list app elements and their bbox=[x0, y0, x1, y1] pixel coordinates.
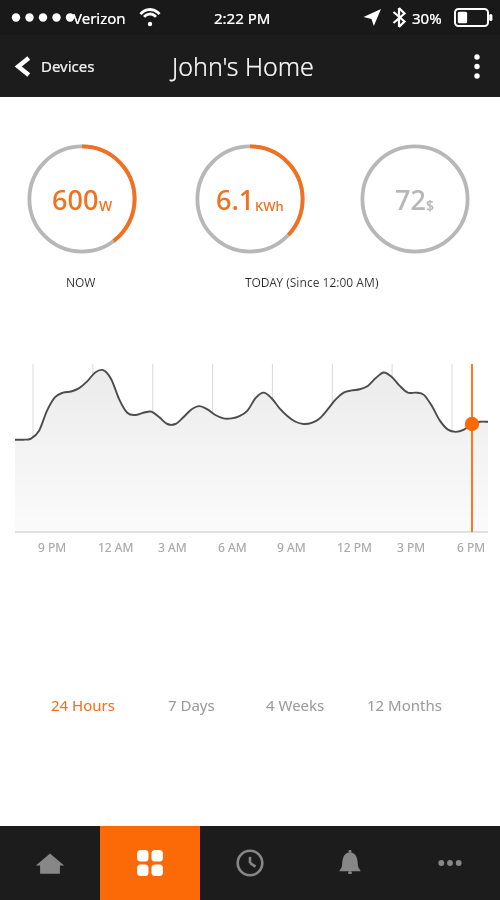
staticText: KWh bbox=[255, 197, 284, 215]
staticText: Devices bbox=[41, 56, 95, 76]
staticText: 600 bbox=[52, 181, 99, 218]
button[interactable]: 7 Days bbox=[159, 690, 224, 720]
button[interactable]: Devices bbox=[0, 35, 109, 97]
button[interactable]: More bbox=[400, 826, 500, 900]
staticText: 7 Days bbox=[168, 695, 215, 715]
staticText: TODAY (Since 12:00 AM) bbox=[245, 274, 379, 290]
button[interactable]: 12 Months bbox=[358, 690, 451, 720]
staticText: Verizon bbox=[73, 8, 126, 28]
staticText: 9 AM bbox=[277, 539, 306, 555]
button[interactable]: History bbox=[200, 826, 300, 900]
staticText: 12 PM bbox=[337, 539, 372, 555]
staticText: $ bbox=[426, 196, 435, 215]
staticText: NOW bbox=[66, 274, 96, 290]
button[interactable]: 24 Hours bbox=[42, 690, 124, 720]
staticText: 30% bbox=[412, 8, 442, 28]
staticText: John's Home bbox=[172, 49, 314, 83]
staticText: 2:22 PM bbox=[214, 8, 271, 28]
button[interactable]: Home bbox=[0, 826, 100, 900]
button[interactable]: Projected cost 72 dollars bbox=[359, 143, 471, 255]
staticText: 24 Hours bbox=[51, 695, 115, 715]
button[interactable]: 4 Weeks bbox=[257, 690, 334, 720]
staticText: 6 AM bbox=[218, 539, 247, 555]
staticText: 4 Weeks bbox=[266, 695, 325, 715]
staticText: 6 PM bbox=[457, 539, 486, 555]
staticText: 6.1 bbox=[216, 181, 255, 218]
button[interactable]: Now 600 watts bbox=[26, 143, 138, 255]
button[interactable]: Devices bbox=[100, 826, 200, 900]
staticText: 3 AM bbox=[158, 539, 187, 555]
staticText: 72 bbox=[395, 181, 426, 218]
staticText: 3 PM bbox=[397, 539, 426, 555]
staticText: W bbox=[99, 196, 113, 215]
staticText: 9 PM bbox=[38, 539, 67, 555]
staticText: 12 AM bbox=[98, 539, 134, 555]
button[interactable]: More options bbox=[454, 35, 500, 97]
button[interactable]: Alerts bbox=[300, 826, 400, 900]
button[interactable]: Today 6.1 kilowatt hours bbox=[194, 143, 306, 255]
staticText: 12 Months bbox=[367, 695, 442, 715]
